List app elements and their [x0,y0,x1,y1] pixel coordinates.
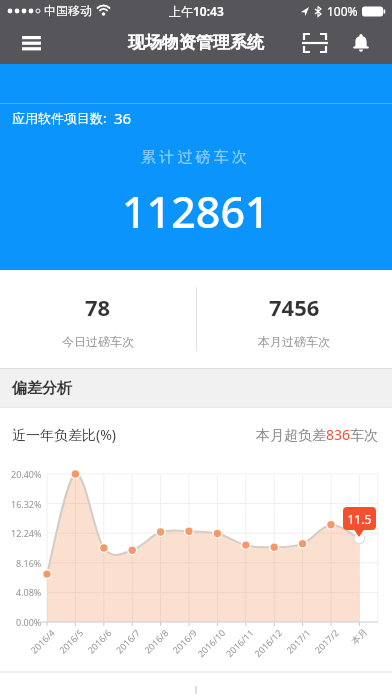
staticText: 今日过磅车次 [62,334,134,349]
staticText: 7456 [269,292,320,322]
button[interactable] [15,28,47,58]
staticText: 本月超负差836车次 [256,425,379,444]
staticText: 100% [327,3,358,19]
staticText: 112861 [122,182,270,241]
button[interactable]: 78 [0,270,196,368]
staticText: 现场物资管理系统 [128,32,264,53]
staticText: 36 [114,108,132,128]
staticText: 中国移动 [44,3,92,18]
staticText: 偏差分析 [12,379,72,398]
staticText: 近一年负差比(%) [12,425,117,444]
staticText: 累计过磅车次 [141,148,251,167]
staticText: 78 [85,292,111,322]
staticText: 上午10:43 [169,3,224,19]
button[interactable]: 7456 [196,270,392,368]
button[interactable] [343,26,379,60]
staticText: 本月过磅车次 [258,334,330,349]
staticText: 应用软件项目数: [12,109,114,127]
button[interactable] [297,26,333,60]
